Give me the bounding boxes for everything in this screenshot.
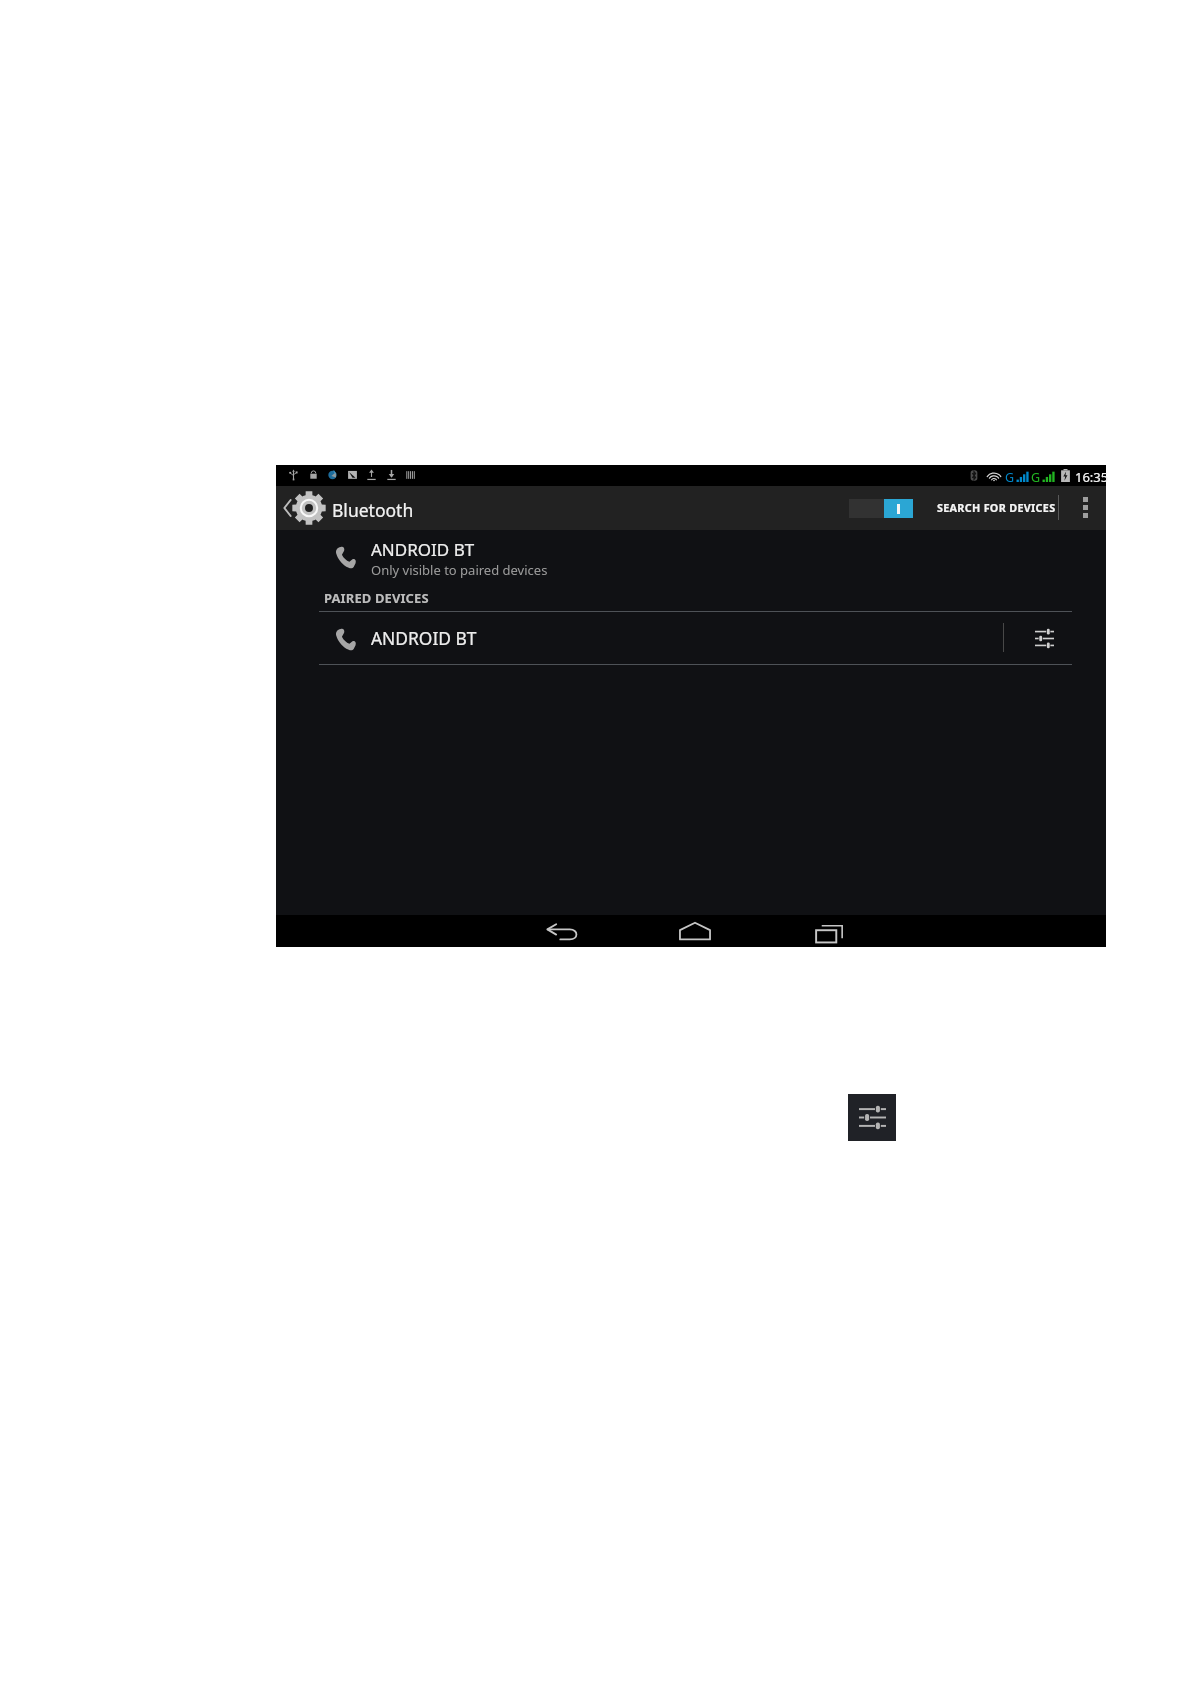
staticText: PAIRED DEVICES	[324, 589, 429, 607]
staticText: ANDROID BT	[371, 538, 475, 561]
staticText: Only visible to paired devices	[371, 561, 548, 579]
staticText: G	[1031, 469, 1041, 486]
button[interactable]: More options	[1070, 486, 1100, 529]
button[interactable]: Navigate up	[276, 486, 328, 530]
staticText: ANDROID BT	[371, 626, 477, 650]
staticText: Bluetooth	[332, 498, 414, 522]
staticText: G	[1005, 469, 1015, 486]
button[interactable]: Recent apps	[774, 915, 884, 947]
button[interactable]: ANDROID BT	[276, 612, 1106, 664]
staticText: 16:35	[1075, 468, 1109, 486]
button[interactable]: Device settings	[848, 1094, 896, 1141]
staticText: SEARCH FOR DEVICES	[937, 500, 1056, 515]
button[interactable]: Device settings	[1016, 612, 1072, 664]
button[interactable]: Bluetooth on	[849, 499, 913, 518]
button[interactable]: SEARCH FOR DEVICES	[937, 490, 1056, 525]
button[interactable]: Back	[508, 915, 618, 947]
button[interactable]: ANDROID BT	[276, 530, 1106, 582]
button[interactable]: Home	[640, 915, 750, 947]
